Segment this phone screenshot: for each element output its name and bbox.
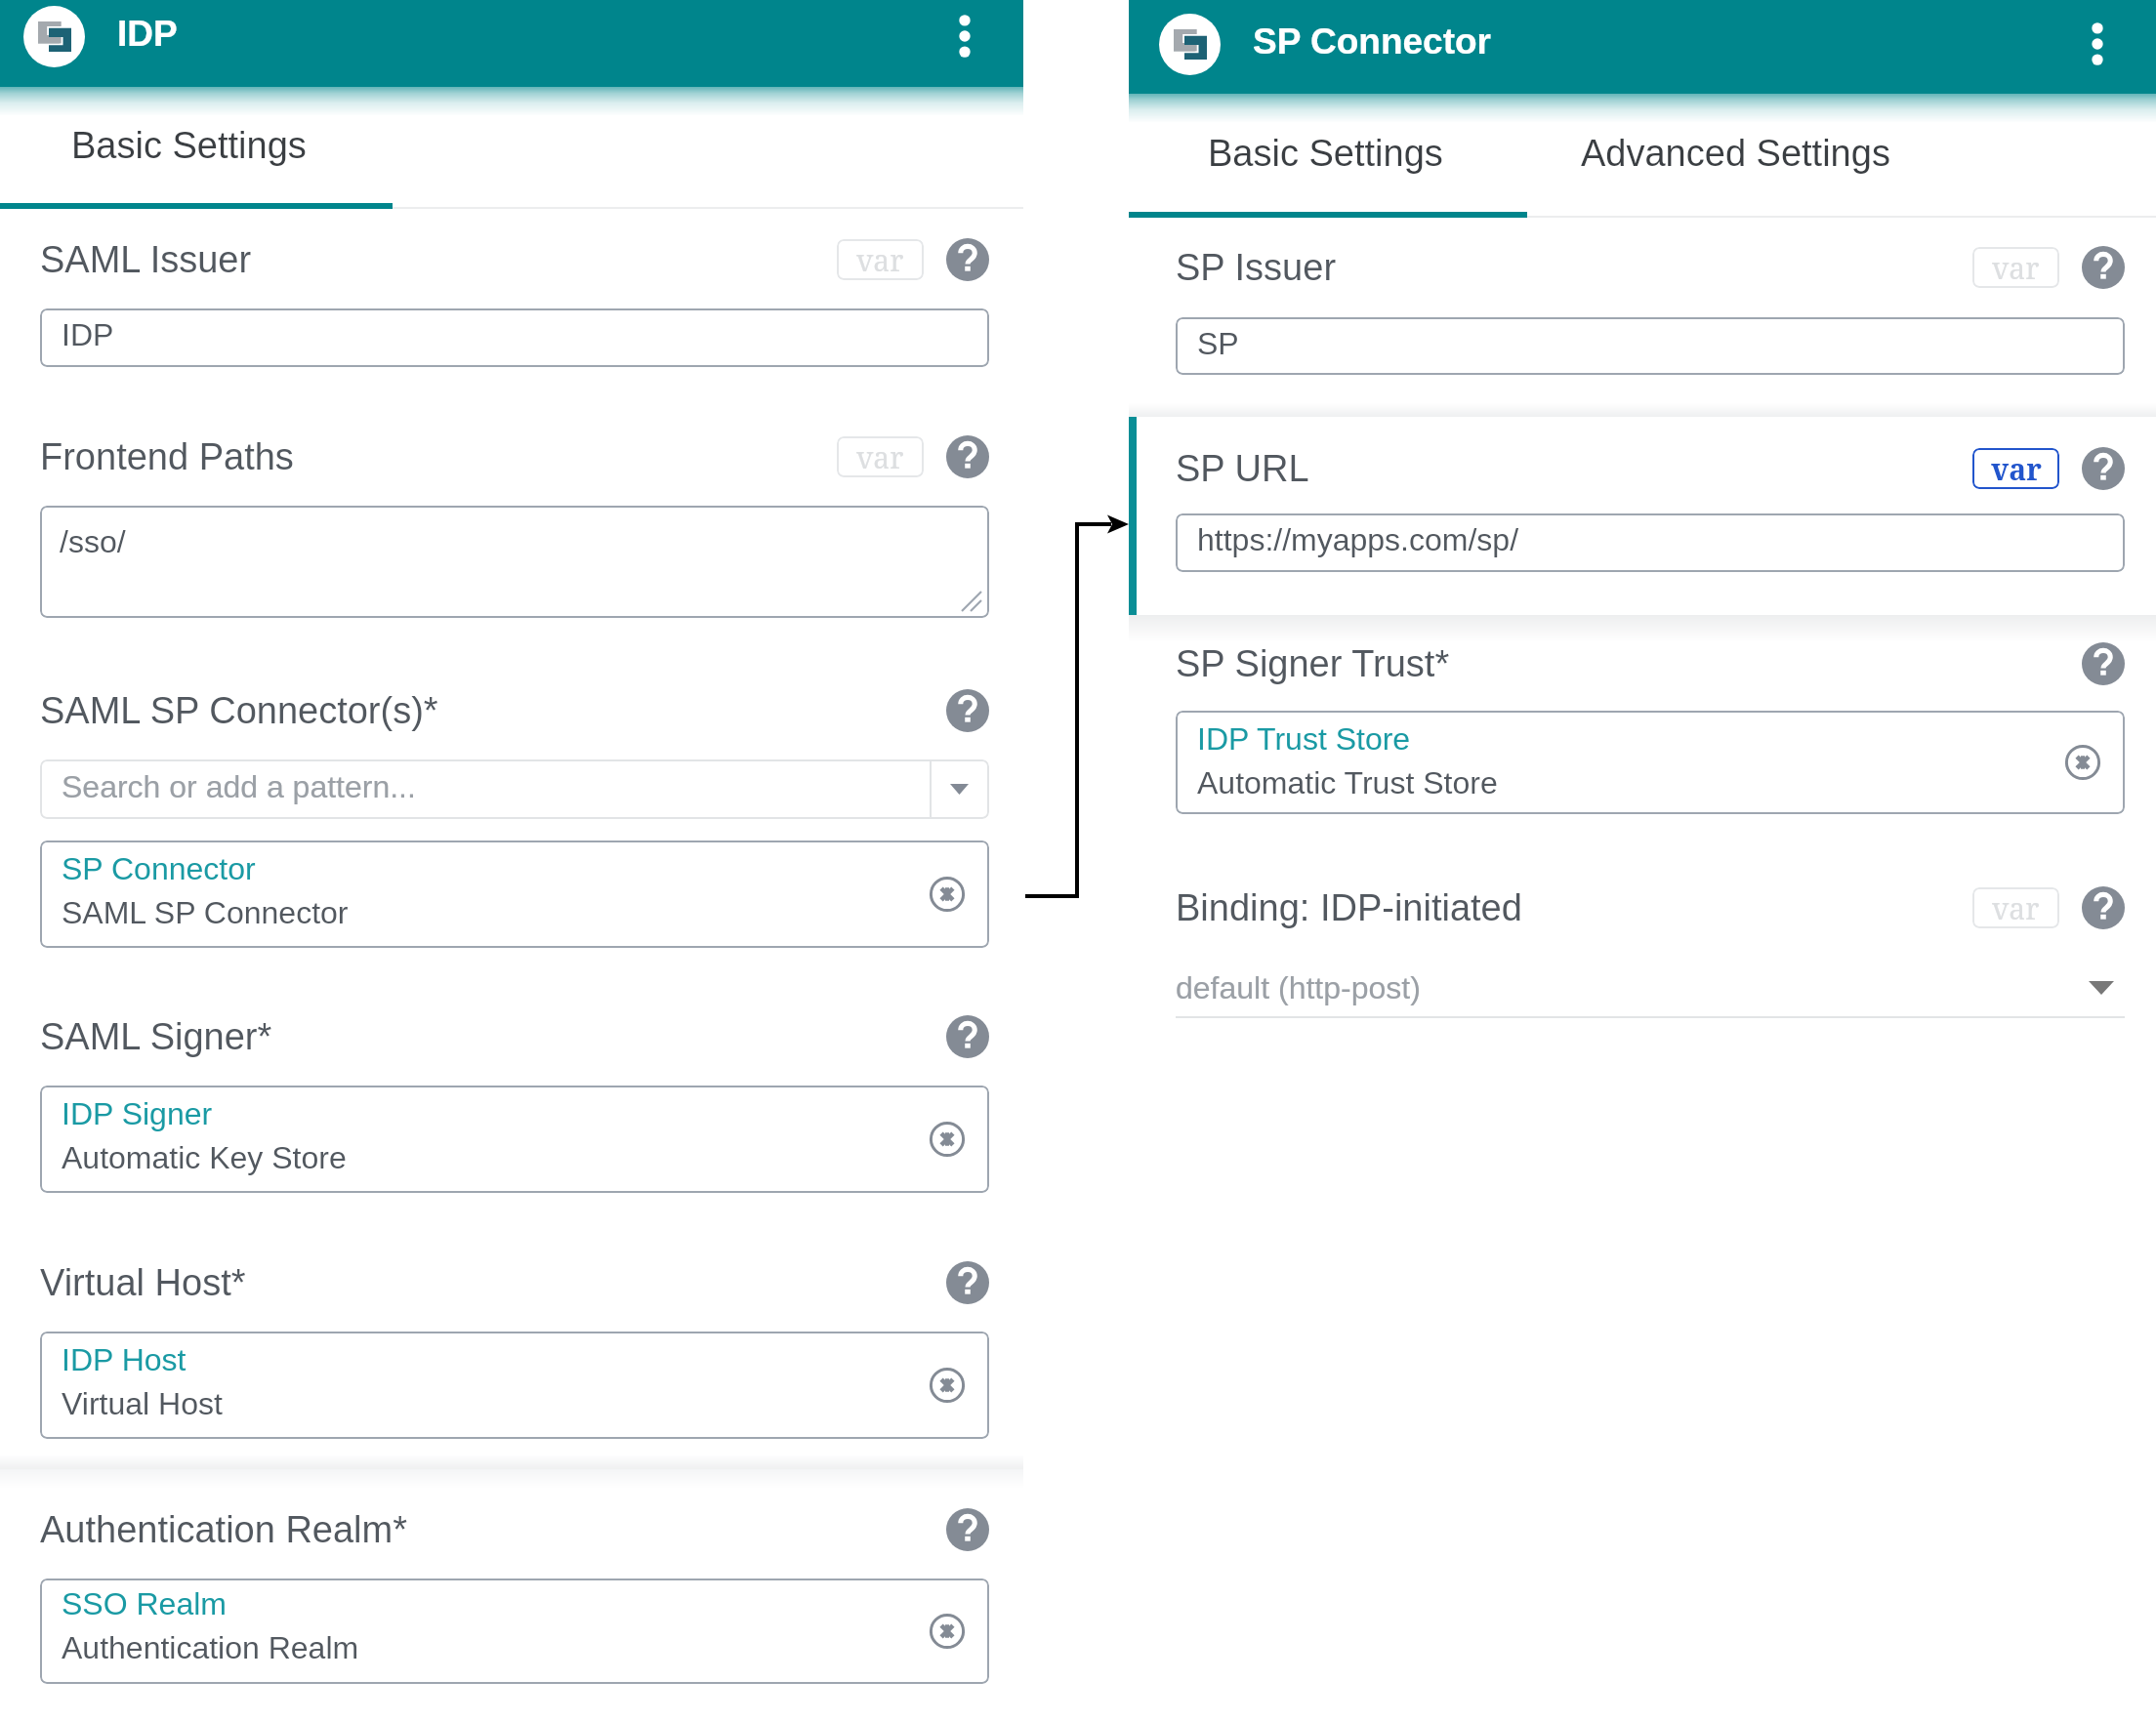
staticText: Authentication Realm	[62, 1630, 359, 1665]
button[interactable]: Basic Settings	[0, 87, 385, 203]
button[interactable]: Remove	[924, 871, 971, 918]
button[interactable]: Remove	[924, 1116, 971, 1163]
button[interactable]: Remove	[924, 1362, 971, 1409]
staticText: Search or add a pattern...	[62, 769, 416, 804]
button[interactable]: Remove	[2059, 739, 2106, 786]
button[interactable]: Basic Settings	[1126, 94, 1524, 212]
staticText: SP URL	[1176, 448, 1309, 489]
staticText: Authentication Realm*	[40, 1509, 407, 1550]
button[interactable]: default (http-post)	[1176, 958, 2125, 1018]
staticText: SAML Signer*	[40, 1016, 272, 1057]
button[interactable]: Help	[946, 1015, 989, 1058]
staticText: SAML SP Connector(s)*	[40, 690, 438, 731]
staticText: Automatic Key Store	[62, 1140, 347, 1175]
staticText: Virtual Host	[62, 1386, 223, 1421]
staticText: IDP	[117, 14, 178, 54]
button[interactable]: Help	[2082, 246, 2125, 289]
button[interactable]: var	[837, 239, 924, 280]
button[interactable]: Help	[946, 238, 989, 281]
button[interactable]: var	[837, 436, 924, 477]
button[interactable]: IDP	[40, 308, 989, 367]
staticText: var	[856, 437, 904, 477]
staticText: Basic Settings	[71, 125, 307, 166]
staticText: Virtual Host*	[40, 1262, 246, 1303]
button[interactable]: IDP Host	[40, 1332, 989, 1439]
staticText: SSO Realm	[62, 1586, 227, 1621]
button[interactable]: Help	[2082, 886, 2125, 929]
button[interactable]: Search or add a pattern...	[40, 759, 989, 819]
button[interactable]: Remove	[924, 1608, 971, 1655]
staticText: SAML SP Connector	[62, 895, 349, 930]
staticText: var	[856, 240, 904, 280]
button[interactable]: More options	[928, 0, 1002, 73]
button[interactable]: Help	[946, 689, 989, 732]
button[interactable]: Help	[946, 435, 989, 478]
staticText: Advanced Settings	[1581, 133, 1890, 174]
button[interactable]: var	[1972, 448, 2059, 489]
button[interactable]: Help	[946, 1261, 989, 1304]
staticText: SP Connector	[62, 851, 256, 886]
staticText: default (http-post)	[1176, 970, 1421, 1005]
button[interactable]: Help	[946, 1508, 989, 1551]
staticText: SP Signer Trust*	[1176, 643, 1450, 684]
button[interactable]: More options	[2060, 7, 2135, 81]
button[interactable]: SP Connector	[40, 840, 989, 948]
staticText: SP	[1197, 326, 1239, 361]
staticText: var	[1992, 248, 2040, 288]
button[interactable]: Advanced Settings	[1337, 94, 2134, 212]
staticText: SAML Issuer	[40, 239, 252, 280]
button[interactable]: SP	[1176, 317, 2125, 375]
staticText: SP Connector	[1253, 21, 1491, 61]
staticText: Automatic Trust Store	[1197, 765, 1498, 800]
staticText: https://myapps.com/sp/	[1197, 522, 1519, 557]
staticText: SP Issuer	[1176, 247, 1337, 288]
staticText: IDP Host	[62, 1342, 187, 1377]
button[interactable]: IDP Signer	[40, 1086, 989, 1193]
staticText: IDP	[62, 317, 114, 352]
staticText: /sso/	[60, 524, 126, 559]
staticText: Frontend Paths	[40, 436, 294, 477]
staticText: Binding: IDP-initiated	[1176, 887, 1522, 928]
staticText: IDP Trust Store	[1197, 721, 1411, 757]
staticText: IDP Signer	[62, 1096, 213, 1131]
button[interactable]: https://myapps.com/sp/	[1176, 513, 2125, 572]
button[interactable]: var	[1972, 887, 2059, 928]
button[interactable]: Help	[2082, 447, 2125, 490]
staticText: Basic Settings	[1208, 133, 1443, 174]
button[interactable]: SSO Realm	[40, 1578, 989, 1684]
button[interactable]: Help	[2082, 642, 2125, 685]
staticText: var	[1991, 449, 2042, 489]
button[interactable]: var	[1972, 247, 2059, 288]
staticText: var	[1992, 888, 2040, 928]
button[interactable]: /sso/	[40, 506, 989, 618]
button[interactable]: IDP Trust Store	[1176, 711, 2125, 814]
